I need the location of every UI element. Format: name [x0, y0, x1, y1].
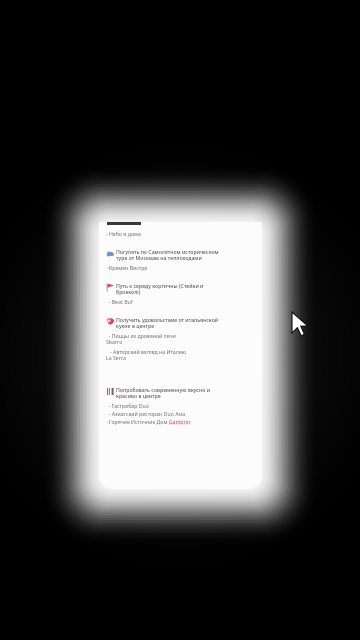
- staticText: - Гастробар Duo: [106, 402, 149, 409]
- staticText: -Кремен Вистри: [106, 264, 148, 271]
- staticText: Попробовать современную вкусно и красиво…: [116, 386, 210, 400]
- staticText: -Горячие Источник Дом Gambrin: [106, 418, 191, 425]
- staticText: - Пиццы из дровяной печи Sbarro: [106, 332, 176, 346]
- staticText: - Beat Buf: [106, 298, 133, 305]
- staticText: - Небо и дома: [106, 230, 141, 237]
- staticText: - Авторский взгляд на Италию La Serra: [106, 348, 187, 362]
- staticText: - Азиатский ресторан Duo Asia: [106, 410, 186, 417]
- staticText: Путь к середу кортичны (Стейки и броккол…: [116, 282, 204, 296]
- button[interactable]: Recommendations card: [99, 222, 262, 489]
- staticText: Получить удовольствие от итальянской кух…: [116, 316, 219, 330]
- staticText: Погулять по Самолётном историческом туре…: [116, 248, 219, 262]
